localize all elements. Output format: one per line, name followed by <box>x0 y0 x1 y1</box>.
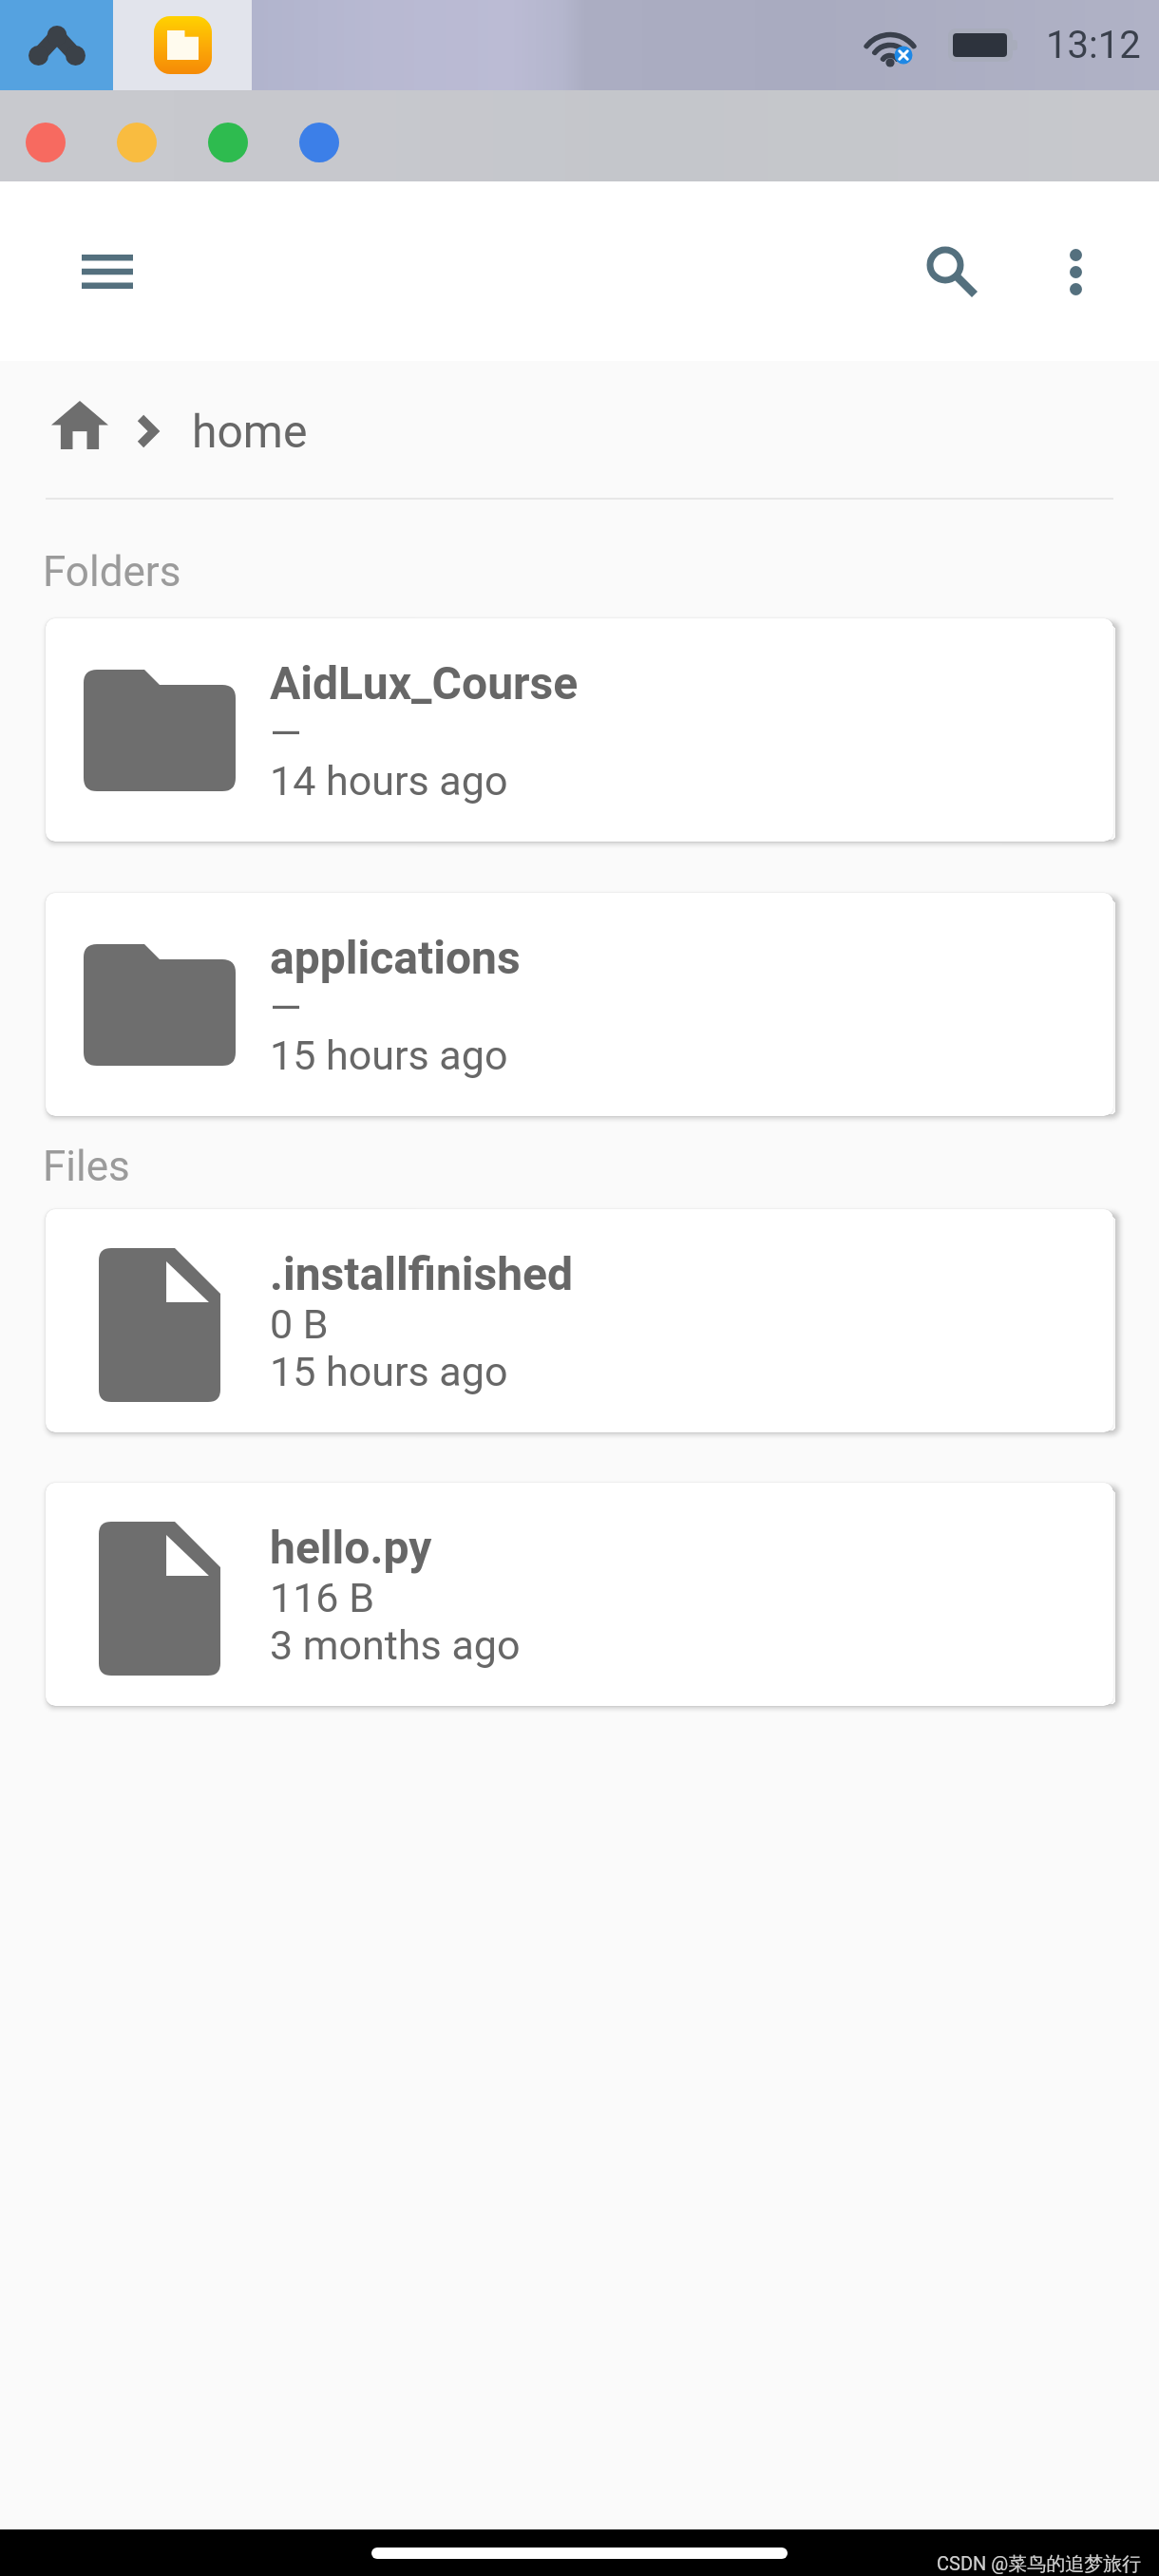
button[interactable]: hello.py <box>46 1483 1113 1706</box>
button[interactable]: Window options <box>299 123 339 162</box>
staticText: AidLux_Course <box>270 656 579 710</box>
button[interactable]: AidLux <box>0 0 113 90</box>
staticText: 0 B <box>270 1300 329 1348</box>
staticText: Folders <box>43 547 181 596</box>
button[interactable]: Close window <box>26 123 66 162</box>
staticText: 15 hours ago <box>270 1032 508 1079</box>
staticText: 3 months ago <box>270 1621 521 1669</box>
staticText: — <box>270 984 302 1032</box>
staticText: 15 hours ago <box>270 1348 508 1395</box>
button[interactable]: Maximize window <box>208 123 248 162</box>
button[interactable]: Search <box>883 203 1020 340</box>
staticText: 13:12 <box>1046 23 1141 67</box>
staticText: hello.py <box>270 1521 432 1574</box>
button[interactable]: Home <box>371 2548 788 2559</box>
staticText: 14 hours ago <box>270 757 508 805</box>
staticText: 116 B <box>270 1574 374 1621</box>
staticText: .installfinished <box>270 1247 574 1300</box>
button[interactable]: .installfinished <box>46 1209 1113 1432</box>
button[interactable]: AidLux_Course <box>46 618 1113 842</box>
staticText: Files <box>43 1142 130 1190</box>
button[interactable]: File manager <box>113 0 252 90</box>
staticText: — <box>270 710 302 757</box>
button[interactable]: Open navigation menu <box>39 203 176 340</box>
button[interactable]: applications <box>46 893 1113 1116</box>
staticText: home <box>192 405 308 458</box>
button[interactable]: More options <box>1007 203 1144 340</box>
button[interactable]: Home directory <box>49 405 110 458</box>
staticText: CSDN @菜鸟的追梦旅行 <box>937 2552 1142 2576</box>
button[interactable]: Minimize window <box>117 123 157 162</box>
staticText: applications <box>270 931 521 984</box>
